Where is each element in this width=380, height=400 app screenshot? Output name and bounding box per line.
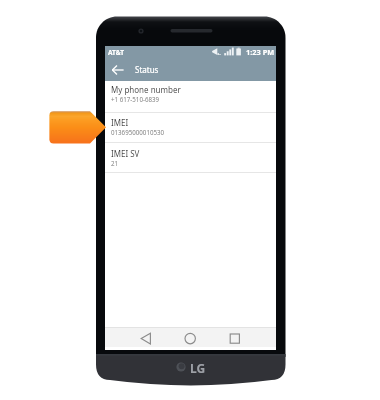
button[interactable]: IMEI (105, 113, 276, 143)
staticText: IMEI SV (111, 148, 140, 159)
button[interactable]: Recents (219, 327, 276, 347)
button[interactable]: Back (105, 327, 162, 347)
button[interactable]: Back (105, 58, 129, 81)
button[interactable]: Home (162, 327, 219, 347)
staticText: Status (135, 64, 159, 75)
staticText: My phone number (111, 84, 181, 95)
staticText: IMEI (111, 117, 129, 128)
staticText: +1 617-510-6839 (111, 95, 160, 103)
staticText: AT&T (108, 48, 124, 57)
button[interactable]: IMEI SV (105, 143, 276, 173)
staticText: 1:23 PM (246, 47, 275, 57)
staticText: 21 (111, 159, 119, 167)
staticText: LG (190, 360, 206, 376)
button[interactable]: My phone number (105, 81, 276, 113)
staticText: 013695000010530 (111, 128, 165, 136)
